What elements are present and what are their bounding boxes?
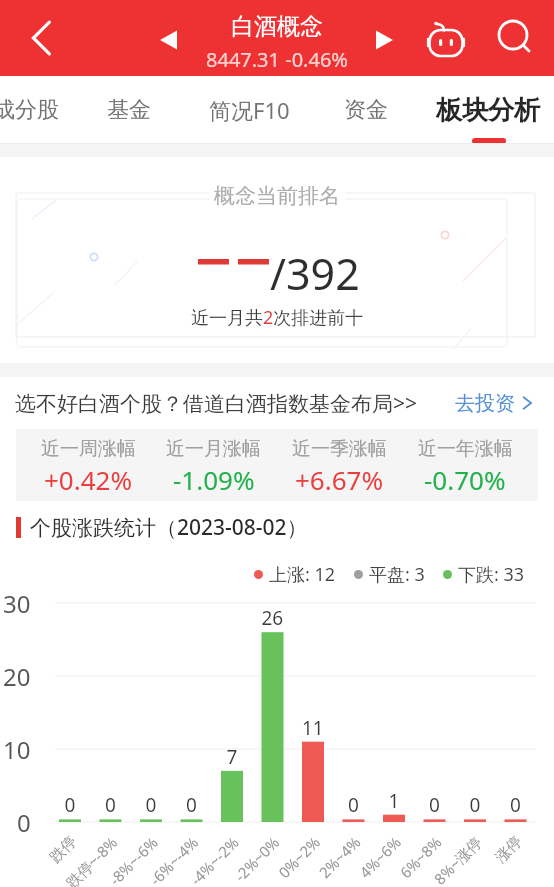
- staticText: 去投资: [455, 391, 515, 416]
- staticText: 近一月共2次排进前十: [191, 305, 364, 330]
- staticText: 资金: [344, 96, 388, 124]
- staticText: 简况F10: [209, 95, 290, 125]
- staticText: 成分股: [0, 96, 59, 124]
- staticText: 白酒概念: [231, 12, 323, 41]
- button[interactable]: 选不好白酒个股？借道白酒指数基金布局>>: [0, 377, 554, 429]
- staticText: -1.09%: [173, 462, 255, 497]
- staticText: 个股涨跌统计（2023-08-02）: [30, 513, 308, 542]
- staticText: -0.70%: [424, 462, 506, 497]
- staticText: +0.42%: [44, 462, 133, 497]
- button[interactable]: Back: [8, 0, 74, 76]
- button[interactable]: 板块分析: [430, 76, 546, 144]
- button[interactable]: Next: [367, 16, 401, 64]
- staticText: 上涨: 12: [269, 562, 336, 587]
- button[interactable]: Search: [487, 0, 543, 76]
- staticText: /392: [270, 244, 360, 303]
- staticText: +6.67%: [295, 462, 384, 497]
- button[interactable]: Previous: [151, 16, 185, 64]
- staticText: 8447.31 -0.46%: [206, 46, 348, 73]
- button[interactable]: 简况F10: [191, 76, 307, 144]
- staticText: 近一季涨幅: [292, 437, 387, 461]
- staticText: 概念当前排名: [214, 183, 340, 209]
- staticText: 平盘: 3: [369, 562, 425, 587]
- staticText: 近一年涨幅: [418, 437, 513, 461]
- button[interactable]: 基金: [71, 76, 187, 144]
- staticText: 板块分析: [436, 94, 540, 127]
- staticText: 下跌: 33: [458, 562, 525, 587]
- staticText: 近一月涨幅: [166, 437, 261, 461]
- button[interactable]: AI assistant: [418, 0, 474, 76]
- staticText: 基金: [107, 96, 151, 124]
- button[interactable]: 资金: [308, 76, 424, 144]
- staticText: 近一周涨幅: [41, 437, 136, 461]
- staticText: 选不好白酒个股？借道白酒指数基金布局>>: [15, 389, 418, 418]
- button[interactable]: 成分股: [0, 76, 84, 144]
